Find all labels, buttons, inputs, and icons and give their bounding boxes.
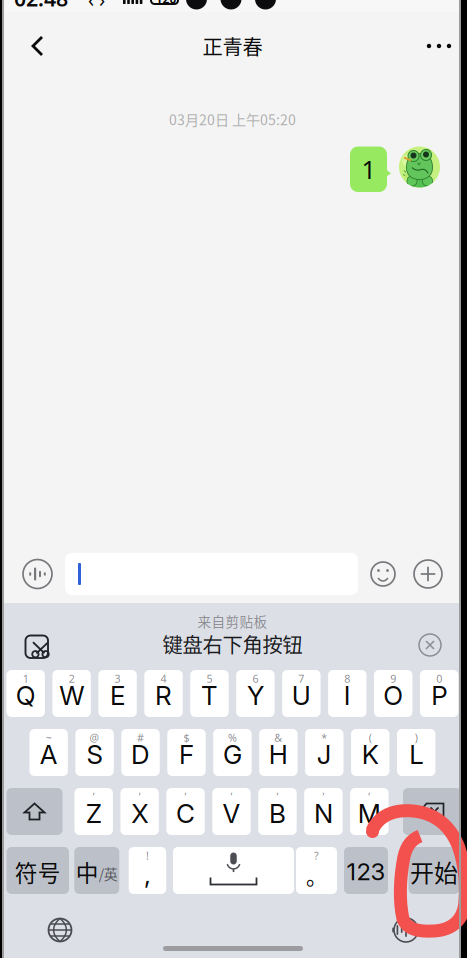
staticText: 7 [298, 671, 304, 686]
button[interactable]: ? [296, 847, 337, 894]
button[interactable]: More options [406, 552, 450, 596]
button[interactable]: 5 [190, 670, 229, 717]
staticText: & [274, 730, 282, 745]
staticText: W [59, 680, 84, 711]
staticText: ( [369, 730, 372, 745]
staticText: J [317, 739, 332, 770]
button[interactable]: * [305, 729, 343, 776]
staticText: % [228, 730, 237, 745]
staticText: 9 [390, 671, 396, 686]
button[interactable]: 6 [236, 670, 275, 717]
staticText: I [344, 680, 351, 711]
staticText: 。 [306, 860, 327, 891]
staticText: 来自剪贴板 [197, 611, 267, 631]
staticText: 2 [69, 671, 75, 686]
staticText: 120 [155, 0, 176, 7]
staticText: X [131, 798, 148, 829]
button[interactable]: @ [75, 729, 114, 776]
staticText: ’ [322, 789, 324, 804]
staticText: 3 [115, 671, 121, 686]
button[interactable]: More [406, 23, 452, 69]
staticText: ! [146, 848, 149, 863]
button[interactable]: Voice message [15, 552, 59, 596]
button[interactable]: 8 [328, 670, 366, 717]
button[interactable]: 1 [6, 670, 45, 717]
button[interactable]: 9 [374, 670, 412, 717]
button[interactable]: 4 [144, 670, 183, 717]
button[interactable]: 符号 [6, 847, 69, 894]
button[interactable]: ~ [29, 729, 68, 776]
staticText: ’ [185, 789, 187, 804]
staticText: E [110, 680, 125, 711]
button[interactable]: & [259, 729, 298, 776]
staticText: ‹ › [88, 0, 105, 13]
staticText: ? [314, 848, 319, 863]
staticText: ) [415, 730, 418, 745]
button[interactable]: ’ [74, 788, 113, 835]
button[interactable]: Voice input [384, 910, 428, 950]
staticText: H [269, 739, 288, 770]
button[interactable]: Delete [403, 788, 461, 835]
button[interactable]: ! [129, 847, 166, 894]
staticText: 123 [346, 857, 385, 886]
staticText: ~ [46, 730, 52, 745]
staticText: M [358, 798, 381, 829]
button[interactable]: Paste from clipboard [17, 626, 61, 668]
button[interactable]: 7 [282, 670, 320, 717]
staticText: 4 [160, 671, 166, 686]
button[interactable]: Dismiss [410, 625, 450, 665]
staticText: 02:48 [14, 0, 68, 12]
staticText: 符号 [15, 855, 61, 888]
button[interactable]: % [213, 729, 252, 776]
staticText: Q [16, 680, 36, 711]
staticText: O [383, 680, 403, 711]
staticText: Z [86, 798, 102, 829]
staticText: 正青春 [202, 31, 262, 61]
button[interactable]: # [121, 729, 160, 776]
staticText: 8 [344, 671, 350, 686]
button[interactable]: 2 [52, 670, 91, 717]
staticText: K [362, 739, 379, 770]
staticText: 中 [76, 855, 99, 888]
button[interactable]: ’ [258, 788, 297, 835]
button[interactable]: 123 [344, 847, 388, 894]
staticText: D [131, 739, 150, 770]
button[interactable]: Shift [6, 788, 62, 835]
button[interactable]: 开始 [408, 847, 459, 894]
staticText: L [409, 739, 423, 770]
staticText: U [292, 680, 311, 711]
button[interactable]: ( [351, 729, 389, 776]
staticText: 开始 [410, 854, 458, 889]
button[interactable]: Space [173, 847, 294, 894]
staticText: 0 [436, 671, 442, 686]
staticText: B [269, 798, 286, 829]
button[interactable]: ’ [166, 788, 205, 835]
button[interactable]: Back [15, 23, 61, 69]
button[interactable]: ’ [212, 788, 251, 835]
button[interactable]: ’ [120, 788, 159, 835]
staticText: G [223, 739, 242, 770]
staticText: Y [247, 680, 264, 711]
button[interactable]: ) [397, 729, 435, 776]
staticText: A [40, 739, 58, 770]
staticText: ’ [93, 789, 95, 804]
staticText: 1 [23, 671, 29, 686]
button[interactable]: 3 [98, 670, 137, 717]
button[interactable]: Switch keyboard [38, 910, 82, 950]
button[interactable]: ’ [350, 788, 388, 835]
button[interactable]: Switch language [74, 847, 119, 894]
staticText: 6 [252, 671, 258, 686]
staticText: @ [90, 730, 100, 745]
button[interactable]: 0 [420, 670, 458, 717]
staticText: ’ [230, 789, 232, 804]
button[interactable]: $ [167, 729, 206, 776]
staticText: , [144, 859, 151, 890]
button[interactable]: Emoji [361, 552, 405, 596]
staticText: # [137, 730, 144, 745]
staticText: ’ [276, 789, 278, 804]
button[interactable]: ’ [304, 788, 343, 835]
staticText: V [222, 798, 240, 829]
staticText: 1 [361, 152, 375, 186]
staticText: ’ [368, 789, 370, 804]
staticText: T [201, 680, 218, 711]
